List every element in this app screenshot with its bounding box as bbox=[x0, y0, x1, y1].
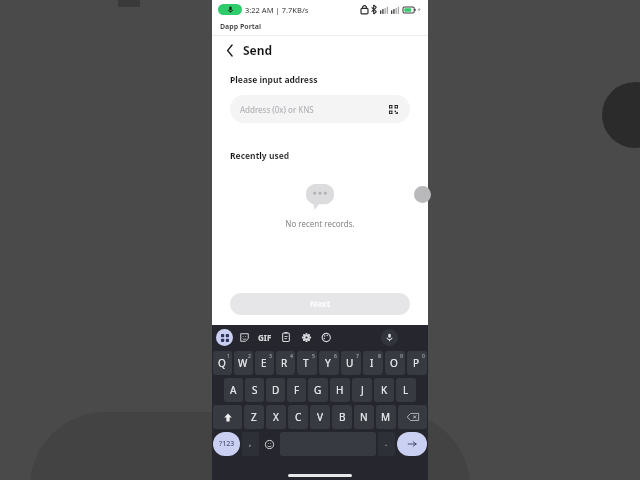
staticText: ?123 bbox=[219, 439, 235, 449]
staticText: Q bbox=[218, 356, 226, 370]
staticText: W bbox=[238, 356, 248, 370]
staticText: O bbox=[390, 356, 398, 370]
button[interactable]: Q bbox=[213, 351, 232, 375]
staticText: ⚡ bbox=[417, 6, 422, 13]
staticText: 8 bbox=[378, 353, 381, 360]
button[interactable]: Scan QR code bbox=[386, 102, 400, 116]
staticText: T bbox=[303, 356, 309, 370]
button[interactable]: L bbox=[396, 378, 416, 402]
staticText: 6 bbox=[334, 353, 337, 360]
staticText: A bbox=[230, 383, 237, 397]
staticText: Send bbox=[243, 42, 273, 58]
staticText: Z bbox=[251, 410, 257, 424]
button[interactable]: U bbox=[341, 351, 361, 375]
staticText: Recently used bbox=[230, 150, 290, 162]
button[interactable]: N bbox=[354, 405, 374, 429]
staticText: B bbox=[339, 410, 346, 424]
staticText: GIF bbox=[258, 332, 272, 343]
button[interactable]: K bbox=[374, 378, 394, 402]
staticText: , bbox=[249, 437, 252, 448]
button[interactable]: M bbox=[376, 405, 396, 429]
staticText: 7 bbox=[356, 353, 359, 360]
button[interactable]: , bbox=[242, 432, 259, 456]
button[interactable]: P bbox=[407, 351, 427, 375]
staticText: 2 bbox=[248, 353, 251, 360]
button[interactable]: O bbox=[385, 351, 405, 375]
button[interactable]: Back bbox=[221, 41, 239, 59]
button[interactable]: D bbox=[266, 378, 285, 402]
staticText: Y bbox=[325, 356, 331, 370]
staticText: Address (0x) or KNS bbox=[240, 104, 314, 115]
staticText: M bbox=[381, 410, 391, 424]
staticText: No recent records. bbox=[285, 218, 355, 229]
staticText: 9 bbox=[400, 353, 403, 360]
button[interactable]: Enter bbox=[397, 432, 427, 456]
button[interactable]: GIF bbox=[255, 332, 275, 343]
staticText: X bbox=[273, 410, 279, 424]
staticText: 1 bbox=[227, 353, 230, 360]
staticText: R bbox=[281, 356, 288, 370]
button[interactable]: H bbox=[330, 378, 350, 402]
button[interactable]: A bbox=[224, 378, 243, 402]
staticText: L bbox=[403, 383, 409, 397]
staticText: Please input address bbox=[230, 74, 318, 86]
button[interactable]: Address (0x) or KNS bbox=[230, 95, 410, 123]
button[interactable]: R bbox=[276, 351, 295, 375]
button[interactable]: J bbox=[352, 378, 372, 402]
button[interactable]: B bbox=[332, 405, 352, 429]
button[interactable]: Voice input bbox=[381, 329, 398, 346]
button[interactable]: Keyboard switcher bbox=[216, 329, 233, 346]
button[interactable]: C bbox=[288, 405, 308, 429]
staticText: 3 bbox=[269, 353, 272, 360]
button[interactable]: G bbox=[308, 378, 328, 402]
button[interactable]: Y bbox=[319, 351, 339, 375]
button[interactable]: Shift bbox=[213, 405, 242, 429]
button[interactable]: Themes bbox=[317, 328, 335, 346]
staticText: P bbox=[413, 356, 420, 370]
button[interactable]: Z bbox=[244, 405, 264, 429]
staticText: 3:22 AM | 7.7KB/s bbox=[245, 5, 309, 15]
staticText: K bbox=[381, 383, 388, 397]
staticText: F bbox=[294, 383, 300, 397]
button[interactable]: Backspace bbox=[398, 405, 427, 429]
staticText: G bbox=[314, 383, 322, 397]
button[interactable]: S bbox=[245, 378, 264, 402]
button[interactable]: ?123 bbox=[213, 432, 240, 456]
staticText: D bbox=[272, 383, 280, 397]
staticText: S bbox=[252, 383, 258, 397]
staticText: U bbox=[346, 356, 354, 370]
staticText: H bbox=[336, 383, 344, 397]
button[interactable]: T bbox=[297, 351, 317, 375]
button[interactable]: Settings bbox=[297, 328, 315, 346]
staticText: N bbox=[360, 410, 368, 424]
staticText: I bbox=[370, 356, 374, 370]
button[interactable]: Clipboard bbox=[277, 328, 295, 346]
staticText: 0 bbox=[422, 353, 425, 360]
button[interactable]: X bbox=[266, 405, 286, 429]
button[interactable]: E bbox=[255, 351, 274, 375]
button[interactable]: . bbox=[378, 432, 395, 456]
staticText: Next bbox=[310, 298, 331, 310]
button[interactable]: F bbox=[287, 378, 306, 402]
staticText: J bbox=[361, 383, 364, 397]
button[interactable]: Stickers bbox=[235, 328, 253, 346]
staticText: V bbox=[317, 410, 323, 424]
button[interactable]: I bbox=[363, 351, 383, 375]
button[interactable]: W bbox=[234, 351, 253, 375]
staticText: . bbox=[385, 437, 388, 448]
staticText: E bbox=[261, 356, 267, 370]
staticText: C bbox=[295, 410, 302, 424]
staticText: 5 bbox=[312, 353, 315, 360]
staticText: Dapp Portal bbox=[220, 22, 262, 32]
button[interactable]: V bbox=[310, 405, 330, 429]
button[interactable]: Next bbox=[230, 293, 410, 315]
button[interactable]: Emoji bbox=[261, 432, 278, 456]
staticText: 4 bbox=[290, 353, 293, 360]
